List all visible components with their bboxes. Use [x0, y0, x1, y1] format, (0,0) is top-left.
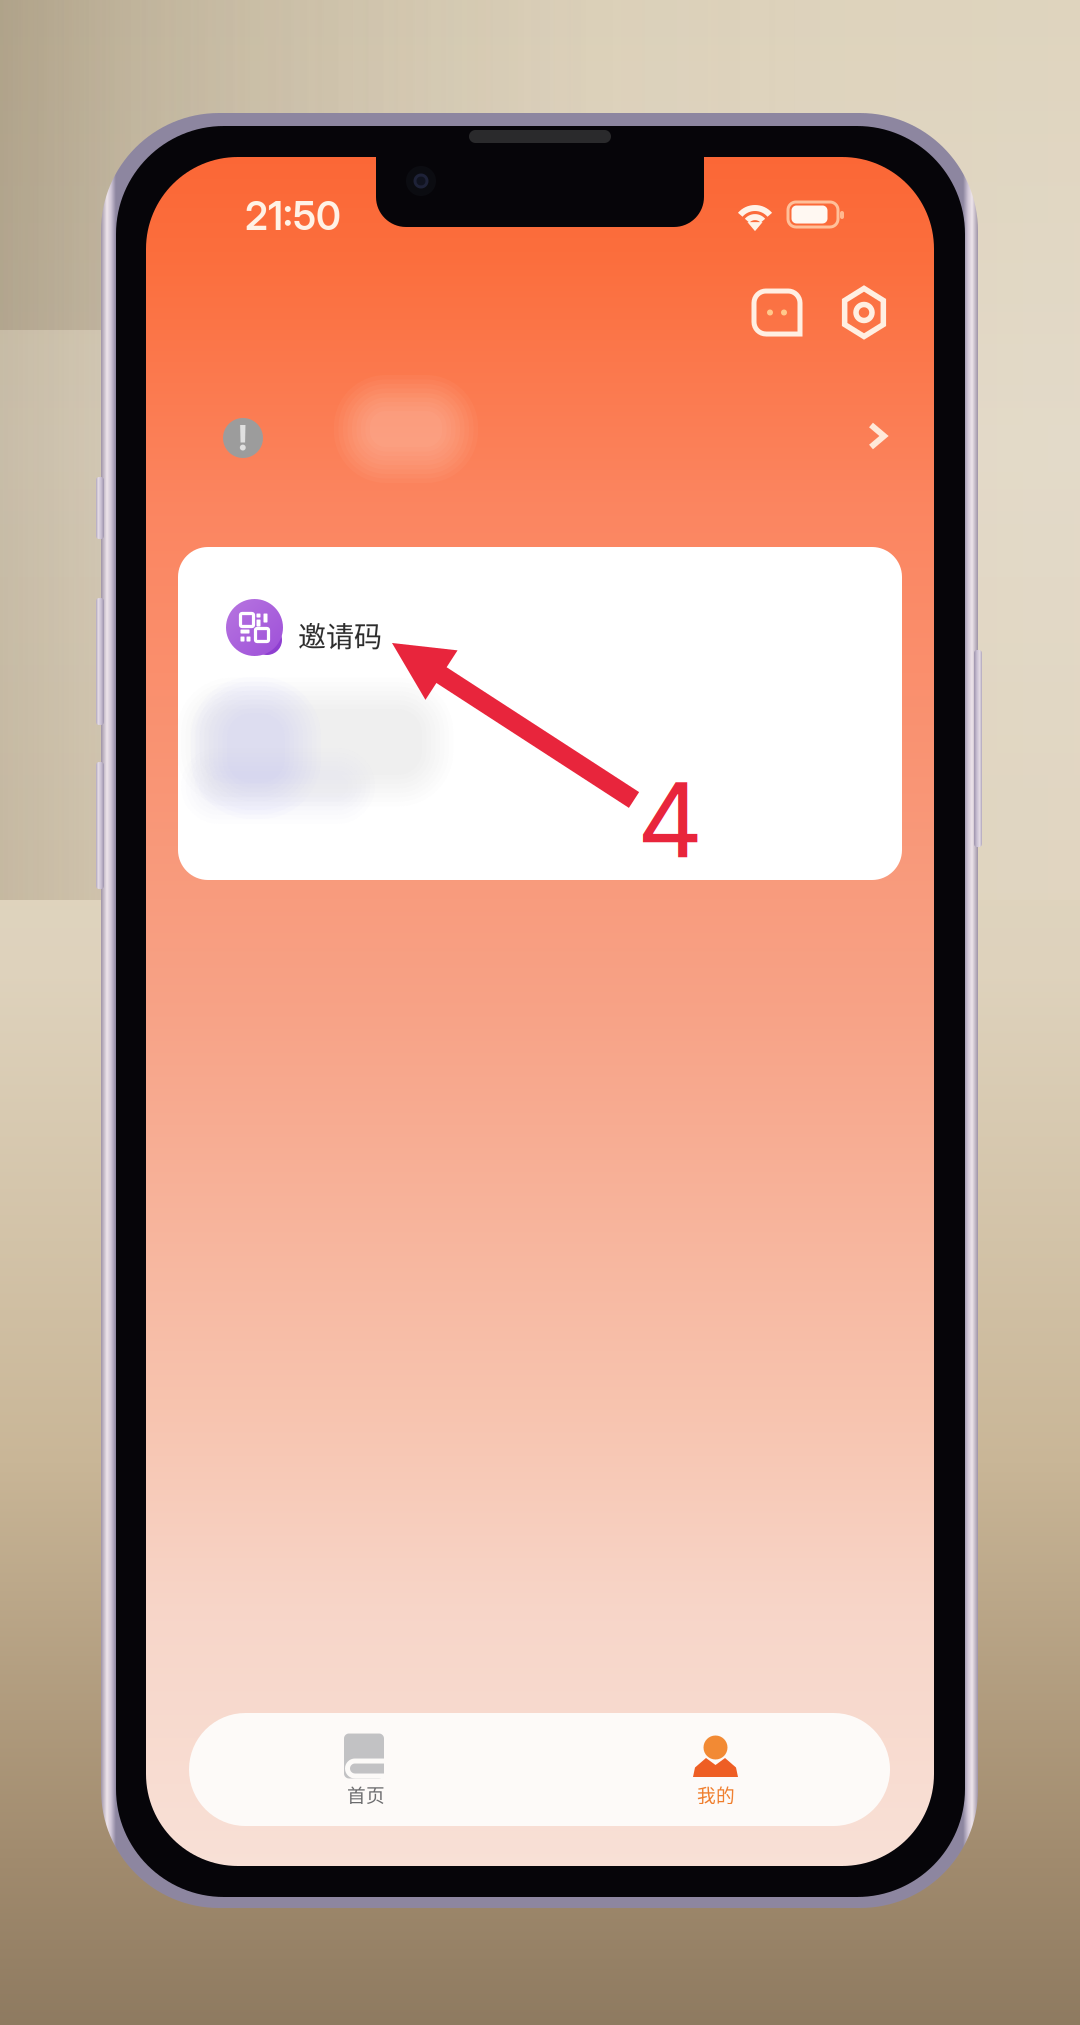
staticText: 21:50 — [245, 193, 341, 239]
button[interactable]: 邀请码 — [218, 591, 518, 659]
button[interactable]: Messages — [754, 291, 800, 334]
button[interactable]: ! — [206, 393, 894, 479]
staticText: 首页 — [347, 1780, 385, 1807]
staticText: 我的 — [697, 1780, 735, 1807]
button[interactable]: 我的 — [539, 1713, 890, 1826]
staticText: ! — [238, 417, 248, 459]
button[interactable]: 首页 — [189, 1713, 539, 1826]
staticText: 邀请码 — [298, 615, 382, 655]
button[interactable]: Settings — [841, 288, 887, 337]
staticText: 4 — [637, 758, 703, 882]
